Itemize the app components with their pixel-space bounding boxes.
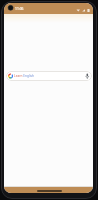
button[interactable] [4,187,93,193]
staticText: 11:06 [15,6,24,10]
staticText: Learn English [14,74,34,78]
button[interactable]: Learn English [6,71,92,81]
